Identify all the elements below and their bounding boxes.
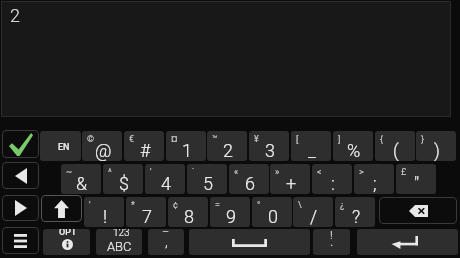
staticText: / (310, 206, 318, 227)
staticText: % (347, 140, 361, 161)
button[interactable]: Shift (41, 195, 82, 222)
button[interactable]: ¢ (168, 197, 208, 227)
staticText: EN (58, 142, 70, 153)
staticText: } (421, 134, 425, 145)
button[interactable]: Enter (357, 229, 458, 255)
staticText: : (331, 173, 335, 194)
staticText: 3 (265, 140, 275, 161)
button[interactable]: Comma (148, 229, 184, 255)
button[interactable]: « (229, 164, 269, 194)
staticText: ABC (107, 239, 132, 254)
button[interactable]: = (210, 197, 250, 227)
staticText: { (380, 134, 384, 145)
button[interactable]: < (312, 164, 352, 194)
staticText: » (275, 167, 280, 178)
button[interactable]: > (354, 164, 394, 194)
staticText: ¥ (254, 134, 259, 145)
button[interactable]: * (126, 197, 166, 227)
button[interactable]: ˙ (187, 164, 227, 194)
button[interactable]: € (124, 131, 164, 161)
staticText: € (129, 134, 135, 145)
button[interactable]: Menu (2, 227, 39, 254)
button[interactable]: { (375, 131, 415, 161)
staticText: ) (434, 140, 440, 161)
staticText: \ (298, 200, 302, 211)
staticText: & (76, 173, 88, 194)
staticText: 1 (182, 140, 192, 161)
button[interactable]: Backspace (379, 197, 457, 224)
button[interactable]: ] (333, 131, 373, 161)
button[interactable]: [ (291, 131, 331, 161)
staticText: . (330, 233, 334, 249)
staticText: ! (103, 206, 108, 227)
staticText: @ (95, 140, 112, 161)
staticText: 2 (223, 140, 233, 161)
staticText: _ (308, 140, 316, 161)
staticText: ! (330, 229, 333, 242)
staticText: # (140, 140, 151, 161)
button[interactable]: © (82, 131, 122, 161)
button[interactable]: ^ (103, 164, 143, 194)
staticText: + (286, 173, 297, 194)
staticText: – (162, 229, 170, 238)
staticText: " (414, 173, 420, 194)
staticText: £ (401, 167, 407, 178)
staticText: ^ (108, 167, 112, 178)
staticText: * (131, 200, 135, 211)
button[interactable]: ' (145, 164, 185, 194)
button[interactable]: Accept (2, 130, 39, 158)
staticText: [ (296, 134, 299, 145)
staticText: 0 (268, 206, 278, 227)
staticText: 4 (161, 173, 171, 194)
staticText: ¤ (171, 134, 178, 145)
button[interactable]: » (270, 164, 310, 194)
staticText: $ (119, 173, 129, 194)
staticText: © (87, 134, 95, 145)
button[interactable]: \ (293, 197, 333, 227)
staticText: 7 (142, 206, 152, 227)
staticText: 2 (10, 5, 20, 26)
staticText: 8 (184, 206, 194, 227)
staticText: ( (393, 140, 399, 161)
staticText: OPT (59, 229, 77, 238)
staticText: = (215, 200, 220, 211)
staticText: ° (257, 200, 261, 211)
staticText: < (317, 167, 322, 178)
button[interactable]: £ (396, 164, 436, 194)
button[interactable]: Options (43, 229, 90, 255)
button[interactable]: ° (252, 197, 292, 227)
button[interactable]: ' (84, 197, 124, 227)
staticText: 6 (245, 173, 255, 194)
staticText: ~ (66, 167, 73, 178)
button[interactable]: ~ (61, 164, 101, 194)
button[interactable]: Move right (2, 195, 39, 221)
button[interactable]: Switch to letters (96, 229, 142, 255)
staticText: ¢ (173, 200, 178, 211)
staticText: ˙ (192, 167, 195, 178)
button[interactable]: } (416, 131, 456, 161)
staticText: ] (338, 134, 341, 145)
staticText: ' (150, 167, 152, 178)
staticText: 5 (203, 173, 213, 194)
staticText: 9 (226, 206, 236, 227)
button[interactable]: Period (313, 229, 350, 255)
staticText: ™ (212, 134, 218, 145)
staticText: , (165, 233, 168, 249)
button[interactable]: Space (189, 229, 310, 255)
staticText: ? (352, 206, 361, 227)
button[interactable]: ¿ (335, 197, 375, 227)
staticText: « (234, 167, 239, 178)
staticText: ; (373, 173, 377, 194)
staticText: ¿ (340, 200, 345, 211)
staticText: > (359, 167, 364, 178)
button[interactable]: ™ (207, 131, 247, 161)
staticText: ' (89, 200, 91, 211)
button[interactable]: ¥ (249, 131, 289, 161)
button[interactable]: Move left (2, 162, 39, 189)
staticText: 123 (113, 229, 130, 239)
button[interactable]: ¤ (166, 131, 206, 161)
button[interactable]: Language (40, 131, 81, 161)
